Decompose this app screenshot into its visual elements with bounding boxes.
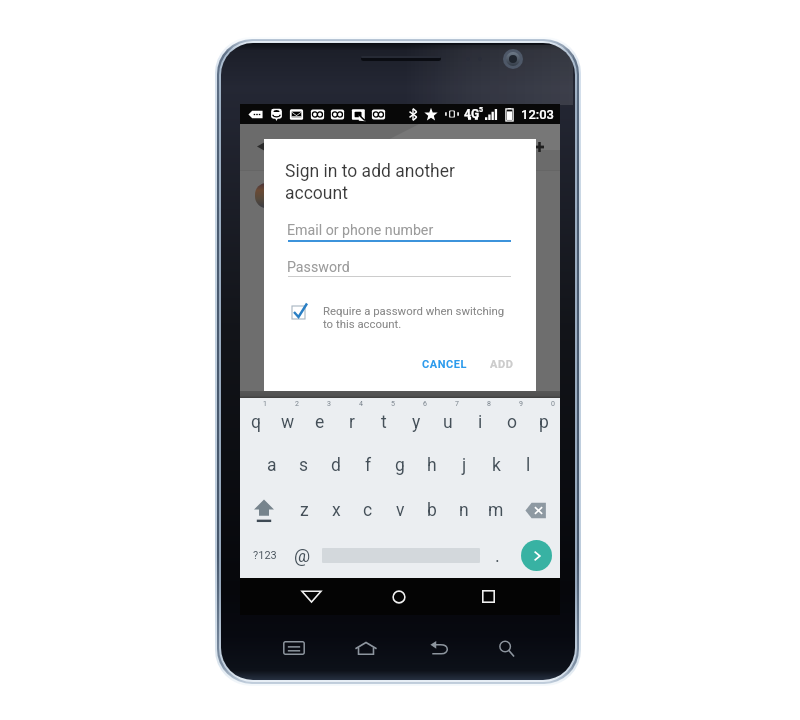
button[interactable]: a: [256, 443, 288, 488]
staticText: 7: [455, 400, 459, 408]
button[interactable]: 0: [528, 398, 560, 443]
button[interactable]: Home: [342, 630, 390, 666]
staticText: Sign in to add another account: [285, 161, 455, 204]
staticText: i: [478, 412, 483, 433]
staticText: Password: [287, 259, 350, 276]
staticText: 4G: [464, 107, 480, 121]
button[interactable]: f: [352, 443, 384, 488]
button[interactable]: CANCEL: [417, 353, 472, 376]
staticText: CANCEL: [422, 358, 467, 371]
staticText: 3: [327, 400, 331, 408]
staticText: g: [395, 455, 405, 476]
button[interactable]: 1: [240, 398, 272, 443]
staticText: Email or phone number: [287, 222, 434, 239]
button[interactable]: ?123: [240, 533, 290, 578]
staticText: w: [281, 412, 295, 433]
staticText: 1: [263, 400, 267, 408]
button[interactable]: 5: [368, 398, 400, 443]
staticText: k: [492, 455, 501, 476]
button[interactable]: Require a password when switching to thi…: [290, 302, 516, 329]
staticText: .: [495, 545, 500, 566]
button[interactable]: Home: [375, 578, 423, 615]
staticText: e: [315, 412, 325, 433]
staticText: x: [332, 500, 341, 521]
staticText: u: [443, 412, 453, 433]
staticText: o: [507, 412, 517, 433]
button[interactable]: .: [484, 533, 510, 578]
staticText: a: [267, 455, 277, 476]
button[interactable]: v: [384, 488, 416, 533]
button[interactable]: 6: [400, 398, 432, 443]
button[interactable]: k: [480, 443, 512, 488]
button[interactable]: Back: [287, 578, 335, 615]
staticText: p: [539, 412, 549, 433]
staticText: h: [427, 455, 437, 476]
button[interactable]: Space: [318, 533, 484, 578]
button[interactable]: b: [416, 488, 448, 533]
staticText: 0: [551, 400, 555, 408]
button[interactable]: 2: [272, 398, 304, 443]
staticText: 12:03: [521, 107, 554, 122]
button[interactable]: j: [448, 443, 480, 488]
button[interactable]: Search: [483, 630, 530, 666]
staticText: q: [251, 412, 261, 433]
staticText: 8: [487, 400, 491, 408]
staticText: d: [331, 455, 341, 476]
button[interactable]: c: [352, 488, 384, 533]
staticText: 4: [359, 400, 363, 408]
staticText: z: [300, 500, 309, 521]
button[interactable]: Enter: [512, 533, 560, 578]
staticText: l: [526, 455, 531, 476]
button[interactable]: Menu: [270, 630, 318, 666]
staticText: @: [294, 545, 311, 566]
staticText: ?123: [253, 549, 277, 562]
button[interactable]: Back: [415, 630, 463, 666]
staticText: 5: [479, 106, 484, 114]
staticText: n: [459, 500, 469, 521]
button[interactable]: 4: [336, 398, 368, 443]
button[interactable]: g: [384, 443, 416, 488]
staticText: Require a password when switching to thi…: [323, 304, 505, 331]
staticText: j: [462, 455, 467, 476]
staticText: s: [299, 455, 309, 476]
button[interactable]: n: [448, 488, 480, 533]
staticText: f: [365, 455, 372, 476]
staticText: c: [363, 500, 373, 521]
staticText: ADD: [490, 358, 514, 371]
staticText: y: [412, 412, 421, 433]
button[interactable]: l: [512, 443, 544, 488]
button[interactable]: Backspace: [512, 488, 560, 533]
button[interactable]: h: [416, 443, 448, 488]
staticText: 2: [295, 400, 299, 408]
staticText: t: [381, 412, 387, 433]
button[interactable]: d: [320, 443, 352, 488]
staticText: r: [349, 412, 355, 433]
button[interactable]: 3: [304, 398, 336, 443]
button[interactable]: 8: [464, 398, 496, 443]
button[interactable]: s: [288, 443, 320, 488]
staticText: 5: [391, 400, 395, 408]
staticText: 6: [423, 400, 427, 408]
button[interactable]: 7: [432, 398, 464, 443]
button[interactable]: x: [320, 488, 352, 533]
staticText: b: [427, 500, 437, 521]
button[interactable]: 9: [496, 398, 528, 443]
staticText: v: [396, 500, 405, 521]
button[interactable]: Recents: [464, 578, 512, 615]
button[interactable]: ADD: [485, 353, 519, 376]
button[interactable]: z: [288, 488, 320, 533]
staticText: m: [488, 500, 504, 521]
button[interactable]: @: [286, 533, 318, 578]
button[interactable]: Shift: [240, 488, 288, 533]
staticText: 9: [519, 400, 523, 408]
button[interactable]: m: [480, 488, 512, 533]
